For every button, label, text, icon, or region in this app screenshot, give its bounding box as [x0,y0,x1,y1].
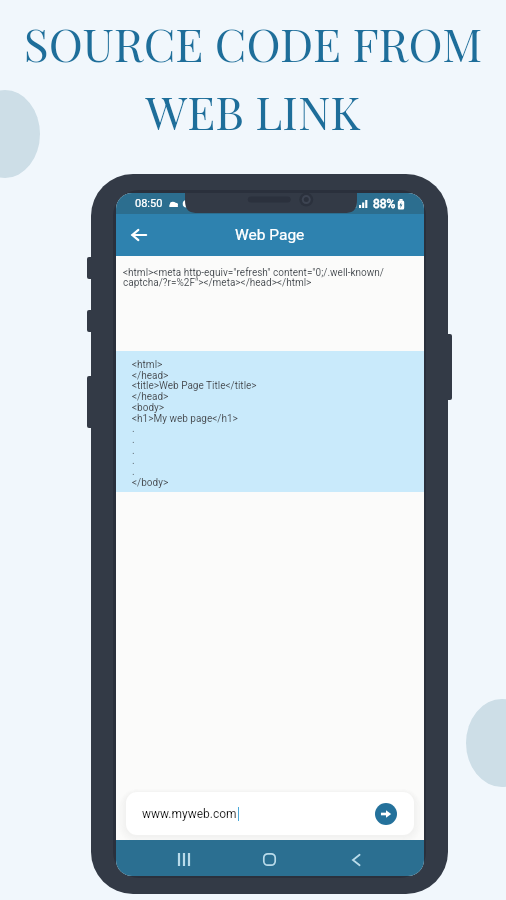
staticText: 88% [373,197,396,211]
staticText: <body> [132,402,165,414]
staticText: . [132,466,135,478]
staticText: . [132,434,135,446]
staticText: 08:50 [135,197,163,210]
button[interactable]: Recent apps [166,842,201,876]
staticText: <html><meta http-equiv="refresh" content… [123,267,384,289]
staticText: <h1>My web page</h1> [132,413,238,425]
staticText: WEB LINK [0,80,506,141]
staticText: </body> [132,477,169,489]
staticText: . [132,423,135,435]
staticText: Web Page [235,226,305,244]
staticText: </head> [132,370,169,382]
button[interactable]: Back [125,221,153,249]
button[interactable]: Back [338,842,373,876]
staticText: . [132,455,135,467]
button[interactable]: Home [252,842,287,876]
staticText: </head> [132,391,169,403]
staticText: <html> [132,359,163,371]
staticText: <title>Web Page Title</title> [132,380,257,392]
button[interactable]: www.myweb.com [126,792,414,835]
button[interactable]: Web Page [116,214,424,256]
button[interactable]: Go [375,803,397,825]
staticText: . [132,445,135,457]
staticText: www.myweb.com [142,807,237,821]
staticText: SOURCE CODE FROM [0,12,506,73]
